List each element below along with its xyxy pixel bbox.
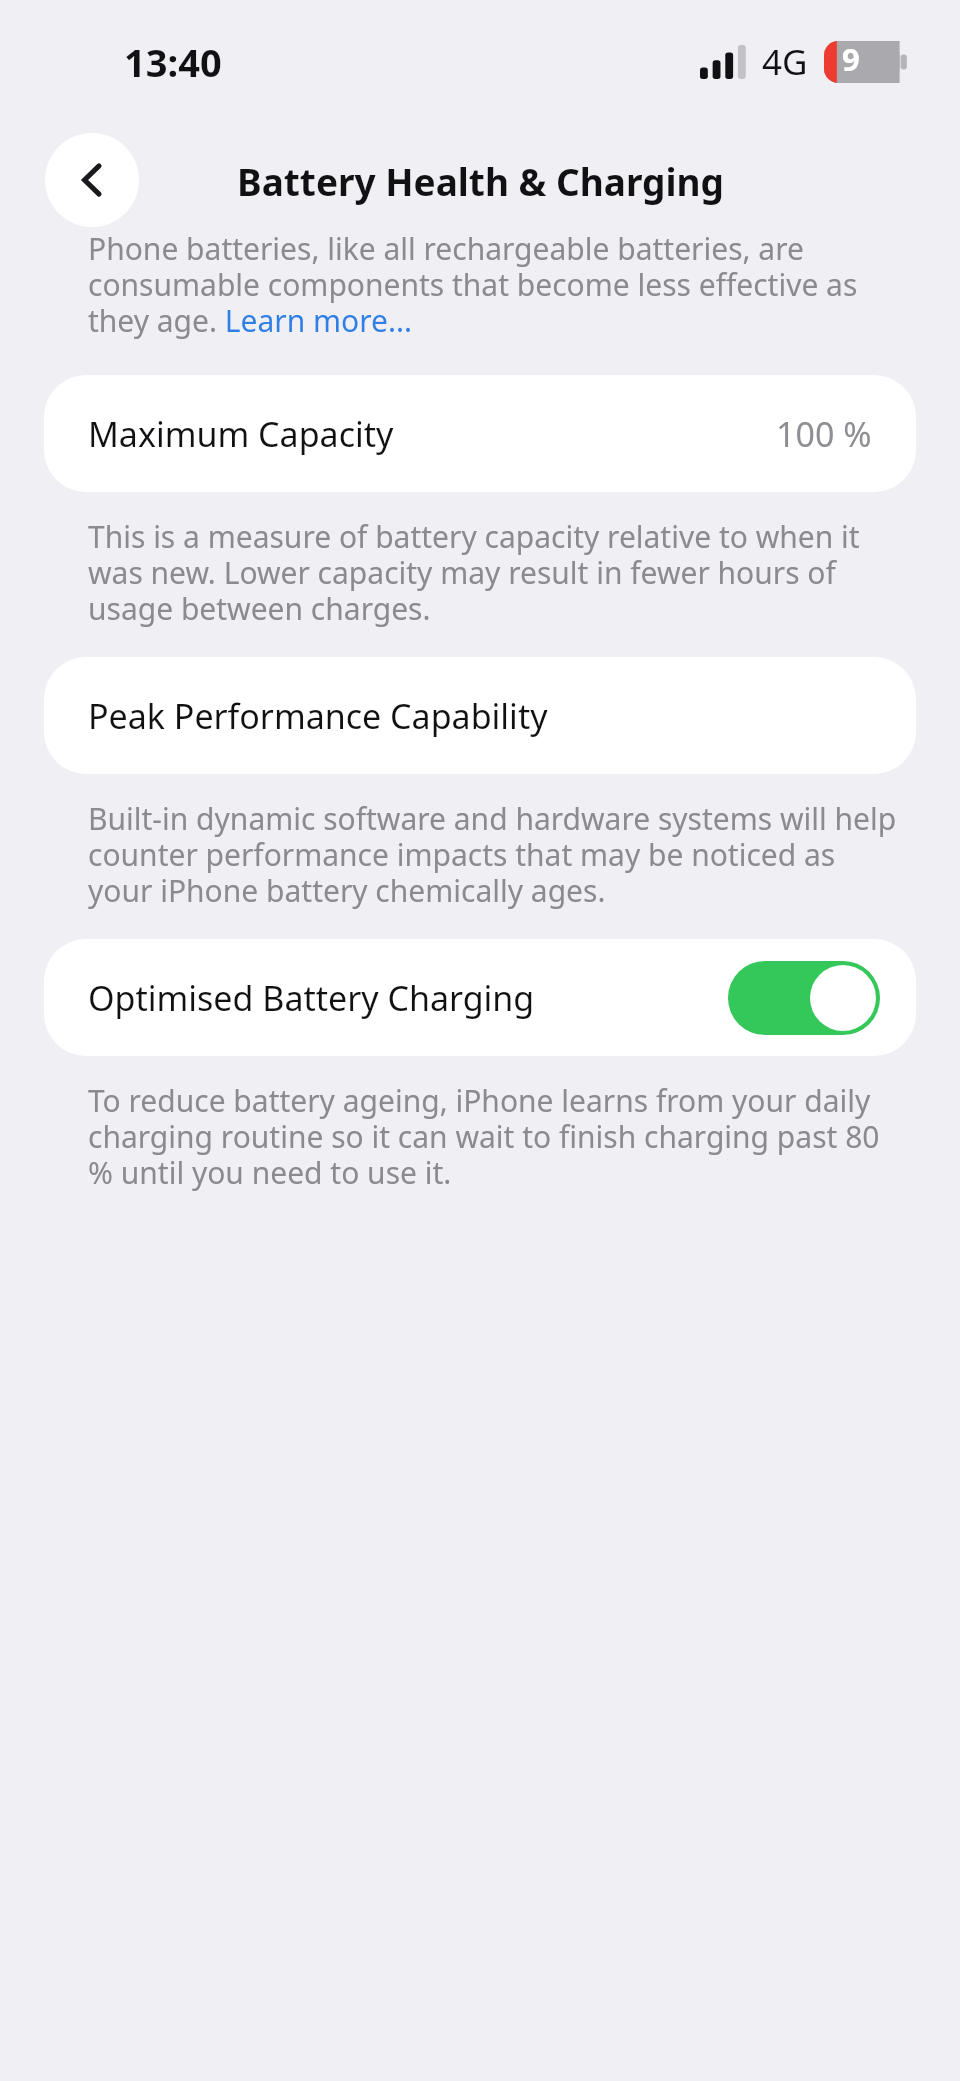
staticText: Built-in dynamic software and hardware s… <box>88 798 902 911</box>
staticText: Battery Health & Charging <box>237 156 724 206</box>
staticText: To reduce battery ageing, iPhone learns … <box>88 1080 902 1193</box>
button[interactable]: Maximum Capacity <box>44 375 916 492</box>
staticText: Maximum Capacity <box>88 411 394 457</box>
staticText: 4G <box>762 38 808 86</box>
button[interactable]: Optimised Battery Charging toggle, on <box>728 961 880 1035</box>
staticText: Optimised Battery Charging <box>88 975 535 1021</box>
staticText: 100 % <box>776 411 872 457</box>
staticText: 13:40 <box>124 36 222 88</box>
staticText: Phone batteries, like all rechargeable b… <box>88 228 900 341</box>
button[interactable]: Optimised Battery Charging <box>44 939 916 1056</box>
staticText: Peak Performance Capability <box>88 693 548 739</box>
staticText: 9 <box>842 38 860 80</box>
button[interactable]: Peak Performance Capability <box>44 657 916 774</box>
staticText: This is a measure of battery capacity re… <box>88 516 902 629</box>
button[interactable]: Back <box>45 133 139 227</box>
